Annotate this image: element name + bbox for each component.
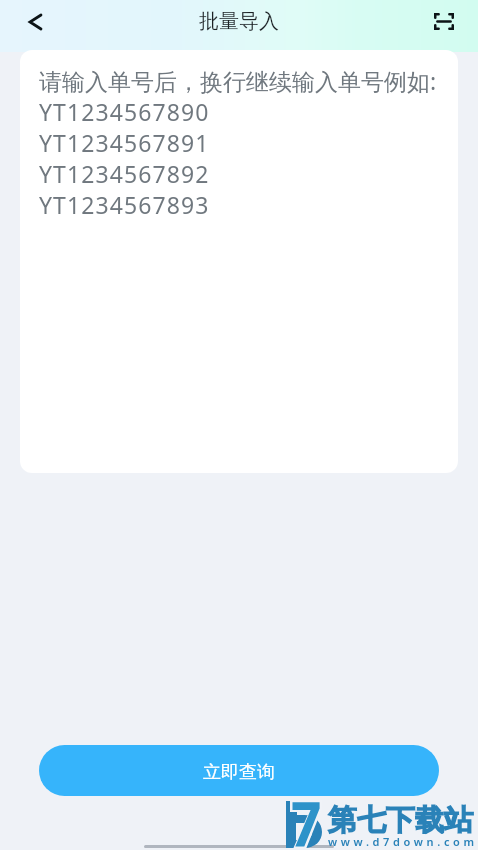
button[interactable]: Scan code [420,0,468,43]
staticText: www.d7down.com [328,834,478,849]
staticText: YT1234567890 YT1234567891 YT1234567892 Y… [39,96,210,220]
button[interactable]: 立即查询 [39,745,439,796]
button[interactable]: 请输入单号后，换行继续输入单号例如: [20,50,458,473]
staticText: 立即查询 [203,761,275,784]
staticText: 请输入单号后，换行继续输入单号例如: [39,65,437,97]
button[interactable]: Back [11,0,59,43]
staticText: 批量导入 [199,9,279,34]
staticText: 第七下载站 [328,802,473,839]
